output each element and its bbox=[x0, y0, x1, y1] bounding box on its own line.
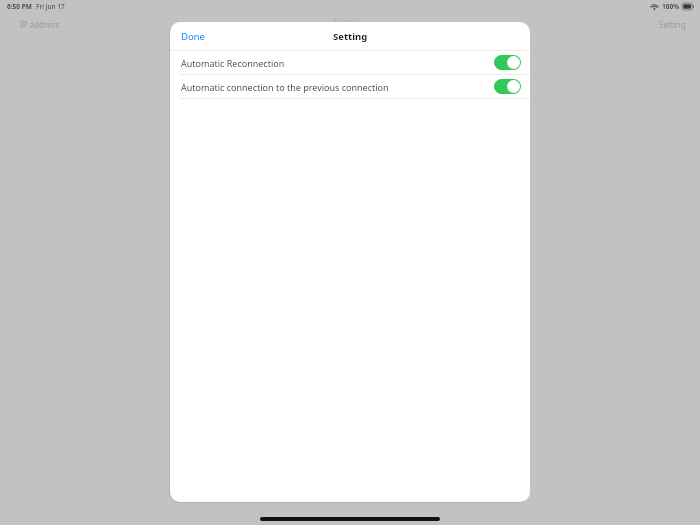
staticText: Automatic Reconnection bbox=[181, 57, 285, 69]
staticText: Automatic connection to the previous con… bbox=[181, 81, 389, 93]
button[interactable]: Automatic connection to the previous con… bbox=[170, 75, 530, 98]
button[interactable]: Automatic Reconnection bbox=[170, 51, 530, 74]
button[interactable]: Toggle bbox=[494, 79, 521, 94]
staticText: 6:50 PM bbox=[7, 2, 32, 11]
staticText: Setting bbox=[659, 19, 686, 30]
staticText: 100% bbox=[662, 2, 680, 11]
staticText: IP address bbox=[20, 19, 60, 30]
staticText: Select bbox=[334, 16, 357, 27]
button[interactable]: Done bbox=[170, 26, 215, 47]
button[interactable]: Toggle bbox=[494, 55, 521, 70]
staticText: Setting bbox=[333, 30, 368, 43]
staticText: Fri Jun 17 bbox=[36, 2, 65, 11]
staticText: Done bbox=[181, 30, 205, 43]
